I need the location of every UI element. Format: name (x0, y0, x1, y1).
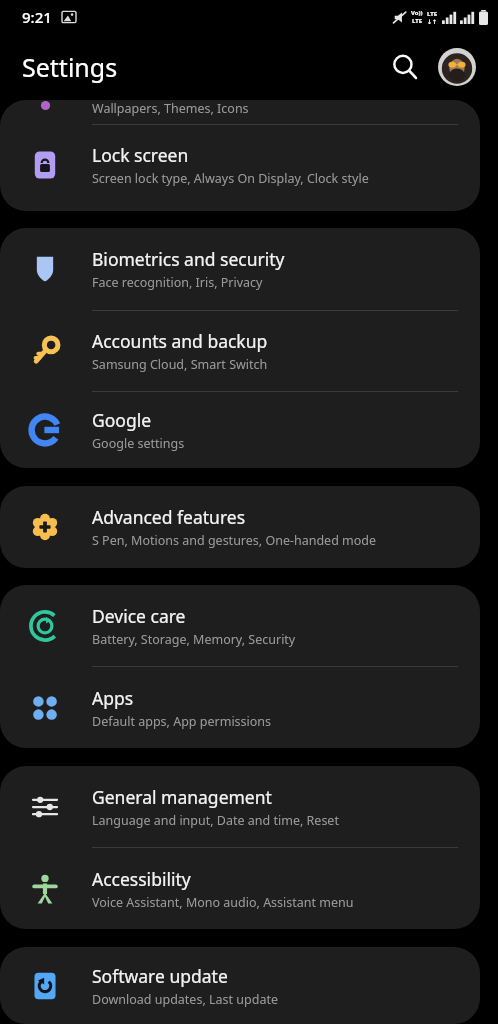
button[interactable]: Software update (0, 947, 480, 1024)
staticText: Advanced features (92, 505, 246, 529)
staticText: Accounts and backup (92, 329, 268, 353)
staticText: Accessibility (92, 867, 191, 891)
staticText: ↓↑ (427, 18, 438, 25)
staticText: S Pen, Motions and gestures, One-handed … (92, 532, 377, 549)
staticText: Default apps, App permissions (92, 713, 272, 730)
staticText: Screen lock type, Always On Display, Clo… (92, 170, 369, 187)
button[interactable]: Google (0, 392, 480, 468)
staticText: 9:21 (22, 7, 52, 27)
staticText: Face recognition, Iris, Privacy (92, 274, 263, 291)
button[interactable]: Search settings (384, 46, 426, 88)
button[interactable]: Device care (0, 585, 480, 666)
staticText: Device care (92, 604, 186, 628)
staticText: Voice Assistant, Mono audio, Assistant m… (92, 894, 354, 911)
button[interactable]: Accounts and backup (0, 311, 480, 391)
staticText: Wallpapers, Themes, Icons (92, 100, 249, 117)
button[interactable]: Accessibility (0, 848, 480, 929)
staticText: Samsung Cloud, Smart Switch (92, 356, 268, 373)
staticText: Language and input, Date and time, Reset (92, 812, 339, 829)
button[interactable]: Apps (0, 667, 480, 748)
staticText: LTE (412, 17, 423, 25)
staticText: General management (92, 785, 272, 809)
staticText: Download updates, Last update (92, 991, 278, 1008)
staticText: Battery, Storage, Memory, Security (92, 631, 296, 648)
staticText: Settings (22, 50, 118, 84)
button[interactable]: General management (0, 766, 480, 847)
staticText: Apps (92, 686, 134, 710)
staticText: Google (92, 408, 152, 432)
button[interactable]: Lock screen (0, 125, 480, 205)
button[interactable]: Wallpapers, Themes, Icons (0, 100, 480, 118)
button[interactable]: Account profile (436, 46, 478, 88)
button[interactable]: Advanced features (0, 486, 480, 568)
staticText: Lock screen (92, 143, 189, 167)
staticText: Vo)) (411, 9, 423, 17)
staticText: LTE (427, 10, 438, 18)
button[interactable]: Biometrics and security (0, 228, 480, 310)
staticText: Biometrics and security (92, 247, 285, 271)
staticText: Google settings (92, 435, 185, 452)
staticText: Software update (92, 964, 228, 988)
